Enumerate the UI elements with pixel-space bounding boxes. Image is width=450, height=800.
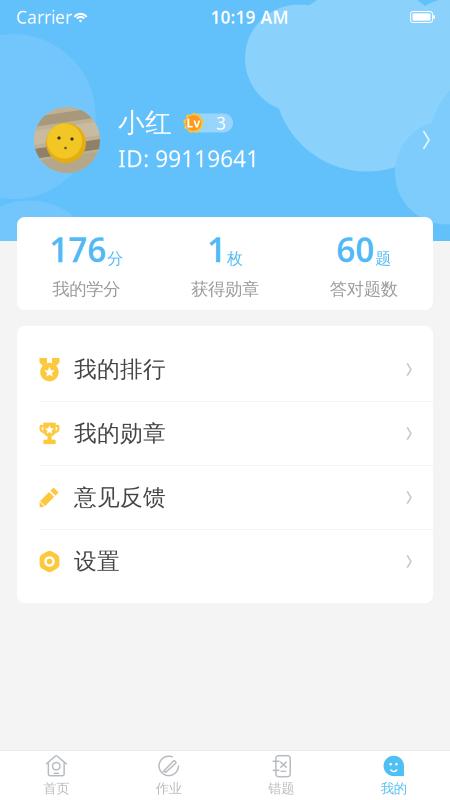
button[interactable]: 设置 [17, 530, 433, 593]
staticText: 设置 [74, 548, 120, 575]
staticText: 分 [107, 249, 123, 268]
button[interactable]: 我的 [337, 751, 450, 800]
staticText: 10:19 AM [210, 5, 288, 28]
staticText: 小红 [118, 107, 172, 139]
staticText: 意见反馈 [74, 484, 166, 511]
button[interactable]: 首页 [0, 751, 112, 800]
staticText: 首页 [43, 780, 69, 797]
button[interactable]: 60 [294, 227, 433, 300]
staticText: 60 [336, 227, 374, 271]
staticText: 题 [375, 249, 391, 268]
staticText: 我的勋章 [74, 420, 166, 447]
button[interactable]: 176 [17, 227, 156, 300]
staticText: 作业 [156, 780, 182, 797]
staticText: 我的排行 [74, 356, 166, 383]
staticText: 我的学分 [52, 278, 120, 300]
staticText: Lv [186, 115, 200, 131]
button[interactable]: 错题 [225, 751, 337, 800]
staticText: 获得勋章 [191, 278, 259, 300]
button[interactable]: 1 [156, 227, 294, 300]
staticText: Carrier [16, 5, 72, 28]
staticText: 我的 [381, 780, 407, 797]
button[interactable]: 小红 [0, 107, 450, 173]
staticText: 176 [49, 227, 106, 271]
staticText: 1 [207, 227, 226, 271]
staticText: 答对题数 [330, 278, 398, 300]
button[interactable]: 作业 [112, 751, 225, 800]
staticText: 枚 [227, 249, 243, 268]
staticText: 错题 [268, 780, 294, 797]
button[interactable]: 意见反馈 [17, 466, 433, 530]
button[interactable]: 我的勋章 [17, 402, 433, 466]
staticText: ID: 99119641 [118, 143, 259, 173]
staticText: 3 [216, 111, 226, 134]
button[interactable]: 我的排行 [17, 338, 433, 402]
